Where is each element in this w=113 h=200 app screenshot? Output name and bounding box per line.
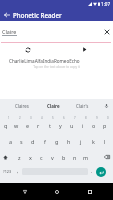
button[interactable]: s <box>16 132 27 150</box>
button[interactable]: u <box>66 112 77 132</box>
button[interactable]: k <box>87 132 99 150</box>
button[interactable]: Clear text <box>101 26 113 38</box>
staticText: e <box>26 122 30 129</box>
button[interactable]: , <box>14 164 22 179</box>
staticText: u <box>70 122 74 129</box>
staticText: CharlieLimaAlfaIndiaRomeoEcho <box>9 58 80 64</box>
staticText: 7 <box>74 116 76 120</box>
staticText: ?123 <box>3 169 12 174</box>
button[interactable]: Claire <box>43 99 64 112</box>
button[interactable]: Clair's <box>64 99 100 112</box>
button[interactable]: m <box>80 150 91 164</box>
staticText: Phonetic Reader <box>13 11 62 19</box>
button[interactable]: q <box>0 112 11 132</box>
button[interactable]: z <box>14 150 25 164</box>
staticText: a <box>9 138 13 145</box>
button[interactable]: Shift <box>0 150 11 164</box>
staticText: Claire <box>2 28 17 35</box>
button[interactable]: Refresh <box>0 43 56 56</box>
button[interactable]: j <box>75 132 87 150</box>
staticText: m <box>83 154 89 161</box>
button[interactable]: h <box>63 132 75 150</box>
staticText: 1 <box>8 116 10 120</box>
button[interactable]: Play <box>56 43 113 56</box>
staticText: q <box>4 122 8 129</box>
button[interactable]: r <box>33 112 44 132</box>
button[interactable]: Enter <box>95 164 106 179</box>
button[interactable]: w <box>11 112 22 132</box>
staticText: Tap on the text above to copy it <box>0 65 113 69</box>
staticText: 0 <box>107 116 109 120</box>
staticText: s <box>20 138 23 145</box>
button[interactable]: a <box>5 132 16 150</box>
staticText: o <box>92 122 96 129</box>
button[interactable]: . <box>88 164 95 179</box>
staticText: b <box>62 154 66 161</box>
button[interactable]: Navigate up <box>0 8 13 21</box>
button[interactable]: x <box>25 150 36 164</box>
staticText: t <box>49 122 51 129</box>
button[interactable]: b <box>58 150 69 164</box>
staticText: k <box>92 138 95 145</box>
staticText: d <box>31 138 35 145</box>
button[interactable]: g <box>51 132 63 150</box>
staticText: Clair's <box>76 103 89 109</box>
staticText: 9 <box>96 116 98 120</box>
button[interactable]: l <box>99 132 111 150</box>
staticText: w <box>14 122 19 129</box>
button[interactable]: Claires <box>0 99 43 112</box>
button[interactable]: Voice input <box>100 99 113 112</box>
button[interactable]: v <box>47 150 58 164</box>
button[interactable]: c <box>36 150 47 164</box>
staticText: r <box>37 122 40 129</box>
staticText: . <box>91 168 93 175</box>
staticText: 6 <box>63 116 65 120</box>
button[interactable]: Back <box>16 183 33 200</box>
staticText: j <box>80 138 82 145</box>
button[interactable]: CharlieLimaAlfaIndiaRomeoEcho <box>0 58 113 64</box>
staticText: Claires <box>15 103 29 109</box>
staticText: f <box>44 138 46 145</box>
staticText: i <box>82 122 84 129</box>
staticText: x <box>29 154 32 161</box>
staticText: v <box>51 154 54 161</box>
staticText: h <box>67 138 71 145</box>
button[interactable]: o <box>88 112 99 132</box>
button[interactable]: Recent apps <box>81 183 98 200</box>
button[interactable]: f <box>39 132 51 150</box>
staticText: 1:07 <box>101 1 111 7</box>
staticText: y <box>59 122 62 129</box>
button[interactable]: p <box>99 112 110 132</box>
button[interactable]: e <box>22 112 33 132</box>
button[interactable]: t <box>44 112 55 132</box>
staticText: z <box>18 154 21 161</box>
staticText: p <box>103 122 107 129</box>
staticText: l <box>104 138 106 145</box>
staticText: c <box>40 154 43 161</box>
staticText: 3 <box>30 116 32 120</box>
staticText: Claire <box>47 103 60 109</box>
button[interactable]: i <box>77 112 88 132</box>
staticText: 4 <box>41 116 43 120</box>
staticText: g <box>55 138 59 145</box>
button[interactable]: n <box>69 150 80 164</box>
staticText: 2 <box>19 116 21 120</box>
staticText: , <box>17 168 19 175</box>
button[interactable]: y <box>55 112 66 132</box>
staticText: 8 <box>85 116 87 120</box>
button[interactable]: Backspace <box>100 150 113 164</box>
staticText: n <box>73 154 77 161</box>
button[interactable]: ?123 <box>0 164 14 179</box>
button[interactable]: d <box>27 132 39 150</box>
staticText: 5 <box>52 116 54 120</box>
button[interactable]: Home <box>48 183 65 200</box>
